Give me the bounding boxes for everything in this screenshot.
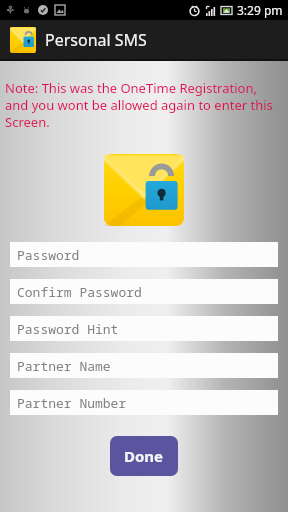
staticText: Personal SMS — [45, 29, 147, 51]
staticText: Done — [124, 446, 164, 466]
staticText: Password — [17, 246, 80, 264]
staticText: 3:29 pm — [237, 2, 283, 18]
button[interactable]: Password — [10, 242, 278, 267]
button[interactable]: Confirm Password — [10, 279, 278, 304]
button[interactable]: Partner Name — [10, 353, 278, 378]
staticText: Partner Name — [17, 357, 111, 375]
other: Personal SMS secure envelope — [104, 154, 184, 226]
staticText: Password Hint — [17, 320, 119, 338]
other: Personal SMS secure envelope — [10, 27, 36, 53]
staticText: Note: This was the OneTime Registration,… — [5, 79, 283, 131]
staticText: Confirm Password — [17, 283, 142, 301]
button[interactable]: Partner Number — [10, 390, 278, 415]
button[interactable]: Done — [110, 436, 178, 476]
button[interactable]: Password Hint — [10, 316, 278, 341]
staticText: Partner Number — [17, 394, 127, 412]
